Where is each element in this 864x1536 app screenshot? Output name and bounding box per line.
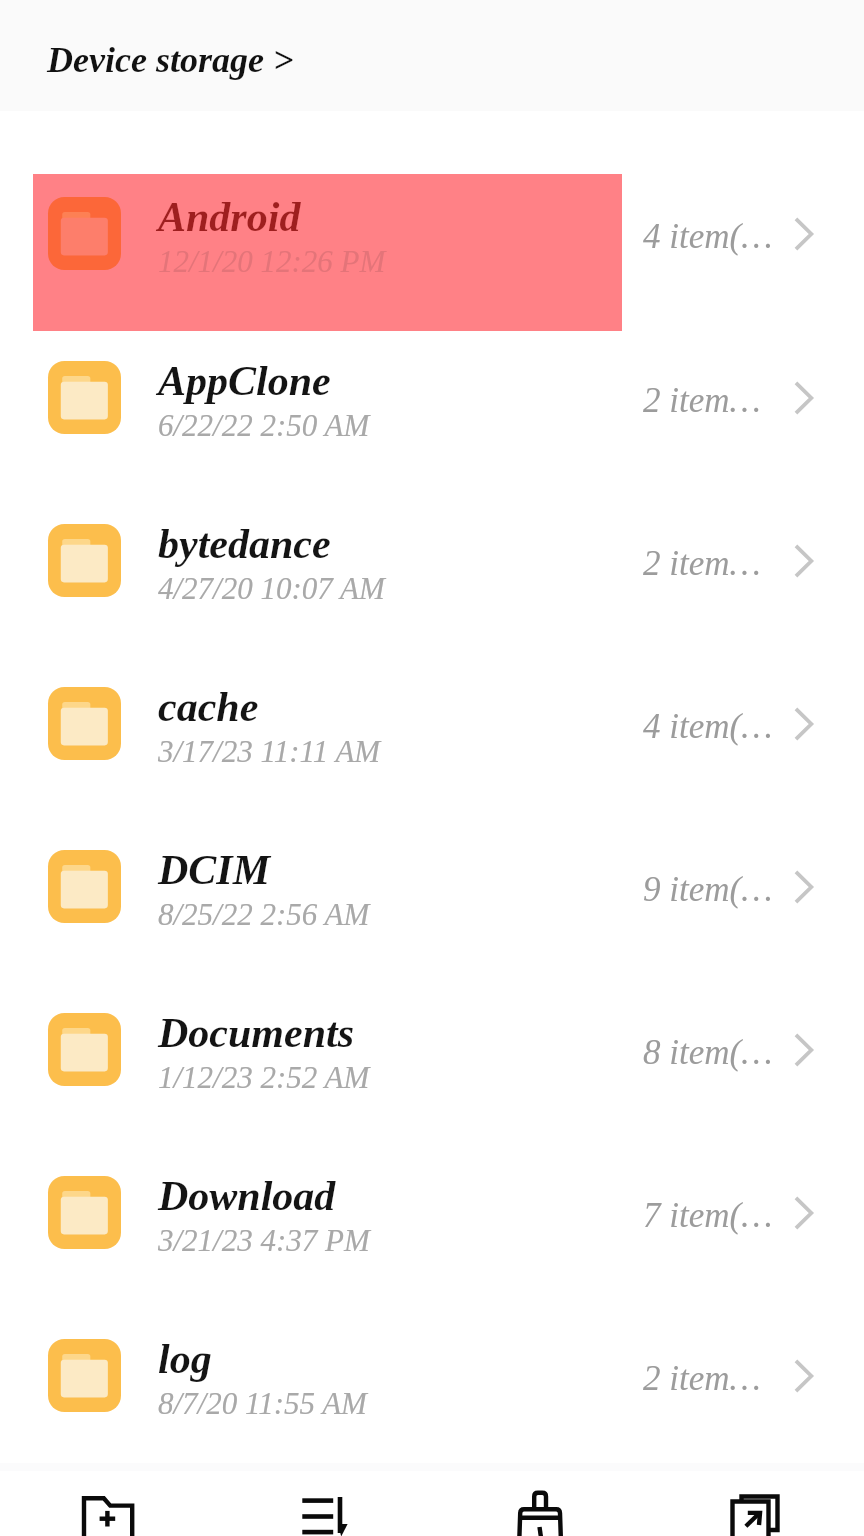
staticText: 12/1/20 12:26 PM: [158, 244, 386, 278]
staticText: 2 item…: [643, 1359, 761, 1398]
staticText: 9 item(…: [643, 870, 773, 909]
button[interactable]: log: [0, 1294, 864, 1457]
button[interactable]: Sort: [216, 1471, 432, 1536]
staticText: Android: [158, 194, 301, 241]
staticText: 4 item(…: [643, 707, 773, 746]
staticText: 3/21/23 4:37 PM: [158, 1223, 370, 1257]
button[interactable]: New folder: [0, 1471, 216, 1536]
button[interactable]: Download: [0, 1131, 864, 1294]
staticText: Device storage >: [47, 40, 294, 80]
button[interactable]: Documents: [0, 968, 864, 1131]
staticText: 7 item(…: [643, 1196, 773, 1235]
staticText: 2 item…: [643, 381, 761, 420]
staticText: 1/12/23 2:52 AM: [158, 1060, 370, 1094]
staticText: 2 item…: [643, 544, 761, 583]
button[interactable]: AppClone: [0, 316, 864, 479]
button[interactable]: bytedance: [0, 479, 864, 642]
staticText: 8/7/20 11:55 AM: [158, 1386, 367, 1420]
button[interactable]: Android: [0, 152, 864, 315]
staticText: DCIM: [158, 847, 271, 894]
staticText: 4/27/20 10:07 AM: [158, 571, 385, 605]
staticText: Download: [158, 1173, 336, 1220]
staticText: cache: [158, 684, 259, 731]
button[interactable]: cache: [0, 642, 864, 805]
staticText: 8 item(…: [643, 1033, 773, 1072]
staticText: 6/22/22 2:50 AM: [158, 408, 370, 442]
staticText: log: [158, 1336, 212, 1383]
button[interactable]: DCIM: [0, 805, 864, 968]
staticText: 3/17/23 11:11 AM: [158, 734, 381, 768]
staticText: 8/25/22 2:56 AM: [158, 897, 370, 931]
staticText: AppClone: [158, 358, 331, 405]
button[interactable]: Device storage >: [0, 0, 864, 111]
staticText: Documents: [158, 1010, 355, 1057]
button[interactable]: Clean: [432, 1471, 648, 1536]
button[interactable]: Open in new window: [648, 1471, 864, 1536]
staticText: 4 item(…: [643, 217, 773, 256]
staticText: bytedance: [158, 521, 331, 568]
